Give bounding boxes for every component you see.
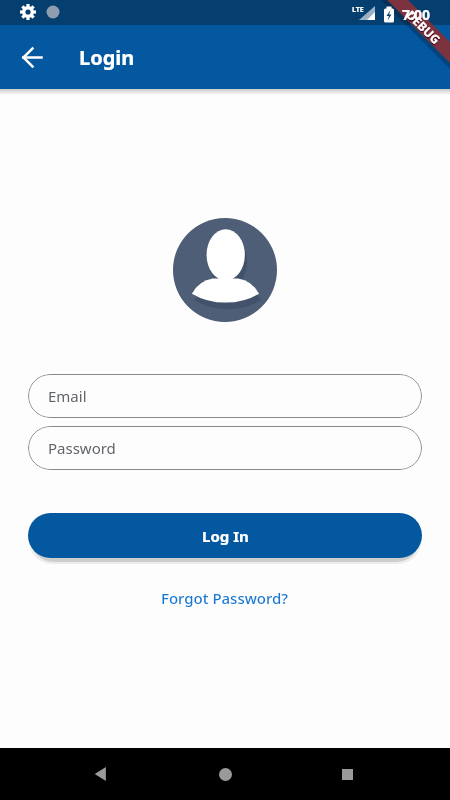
button[interactable]: Password — [28, 426, 422, 470]
button[interactable]: Log In — [28, 513, 422, 558]
staticText: Log In — [202, 526, 249, 546]
button[interactable]: Forgot Password? — [161, 588, 289, 608]
staticText: Password — [48, 438, 116, 458]
button[interactable] — [12, 37, 52, 77]
button[interactable] — [71, 748, 131, 800]
staticText: Email — [48, 386, 87, 406]
button[interactable]: Email — [28, 374, 422, 418]
staticText: Forgot Password? — [161, 588, 289, 608]
staticText: Login — [79, 44, 135, 71]
button[interactable] — [195, 748, 255, 800]
button[interactable] — [317, 748, 377, 800]
